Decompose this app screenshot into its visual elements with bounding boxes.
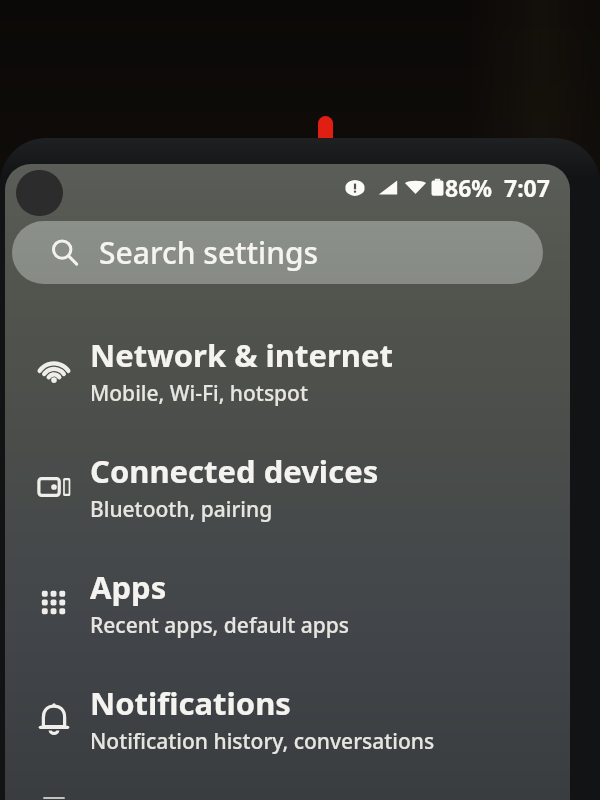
- button[interactable]: Apps: [5, 562, 570, 644]
- staticText: Apps: [90, 566, 167, 608]
- staticText: 86%: [445, 172, 493, 203]
- staticText: Recent apps, default apps: [90, 611, 349, 640]
- staticText: Notifications: [90, 682, 291, 724]
- button[interactable]: Connected devices: [5, 446, 570, 528]
- button[interactable]: Notifications: [5, 678, 570, 760]
- staticText: Search settings: [99, 232, 319, 273]
- staticText: 7:07: [504, 172, 550, 203]
- staticText: Mobile, Wi-Fi, hotspot: [90, 379, 308, 408]
- staticText: Connected devices: [90, 450, 379, 492]
- staticText: Notification history, conversations: [90, 727, 435, 756]
- button[interactable]: Network and internet: [5, 330, 570, 412]
- button[interactable]: Search settings: [12, 221, 543, 284]
- button[interactable]: Battery: [5, 794, 570, 800]
- staticText: Network & internet: [90, 334, 393, 376]
- staticText: Bluetooth, pairing: [90, 495, 273, 524]
